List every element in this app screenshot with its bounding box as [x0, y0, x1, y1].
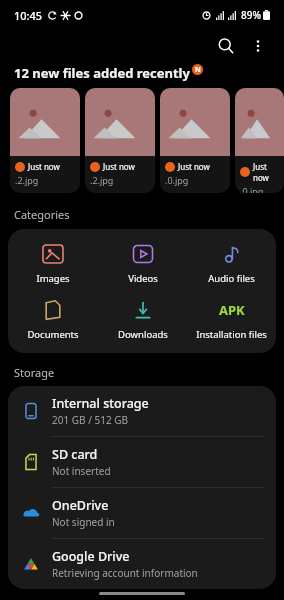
- staticText: 89%: [241, 8, 261, 22]
- staticText: SD card: [52, 446, 98, 463]
- staticText: Images: [36, 272, 70, 285]
- button[interactable]: Downloads: [98, 295, 187, 343]
- staticText: 10:45: [14, 8, 43, 23]
- staticText: .2.jpg: [90, 174, 114, 186]
- staticText: Not inserted: [52, 464, 111, 478]
- staticText: 201 GB / 512 GB: [52, 413, 128, 427]
- staticText: 12 new files added recently: [14, 64, 190, 82]
- button[interactable]: Google Drive: [8, 539, 276, 589]
- staticText: APK: [219, 301, 245, 319]
- button[interactable]: Internal storage: [8, 386, 276, 436]
- staticText: Google Drive: [52, 548, 130, 565]
- button[interactable]: Search: [210, 30, 242, 62]
- button[interactable]: Images: [8, 239, 98, 287]
- staticText: Retrieving account information: [52, 566, 198, 580]
- staticText: Just now: [178, 161, 210, 172]
- button[interactable]: Just now: [235, 88, 284, 193]
- staticText: .0.jpg: [240, 185, 264, 193]
- staticText: Storage: [14, 365, 55, 380]
- staticText: Audio files: [208, 272, 255, 285]
- staticText: Videos: [128, 272, 158, 285]
- staticText: Just now: [103, 161, 135, 172]
- button[interactable]: More options: [242, 30, 274, 62]
- staticText: Internal storage: [52, 395, 149, 412]
- button[interactable]: Just now: [10, 88, 80, 193]
- staticText: .0.jpg: [165, 174, 189, 186]
- staticText: Categories: [14, 207, 70, 222]
- button[interactable]: Audio files: [187, 239, 276, 287]
- staticText: .2.jpg: [15, 174, 39, 186]
- button[interactable]: Just now: [160, 88, 230, 193]
- button[interactable]: Videos: [98, 239, 187, 287]
- button[interactable]: Just now: [85, 88, 155, 193]
- staticText: Not signed in: [52, 515, 115, 529]
- button[interactable]: OneDrive: [8, 488, 276, 538]
- staticText: Documents: [27, 328, 79, 341]
- staticText: Downloads: [118, 328, 168, 341]
- staticText: OneDrive: [52, 497, 109, 514]
- staticText: Just now: [28, 161, 60, 172]
- button[interactable]: SD card: [8, 437, 276, 487]
- staticText: Just now: [253, 161, 284, 183]
- staticText: N: [195, 65, 201, 75]
- button[interactable]: Documents: [8, 295, 98, 343]
- button[interactable]: APK: [187, 295, 276, 343]
- staticText: Installation files: [196, 328, 267, 341]
